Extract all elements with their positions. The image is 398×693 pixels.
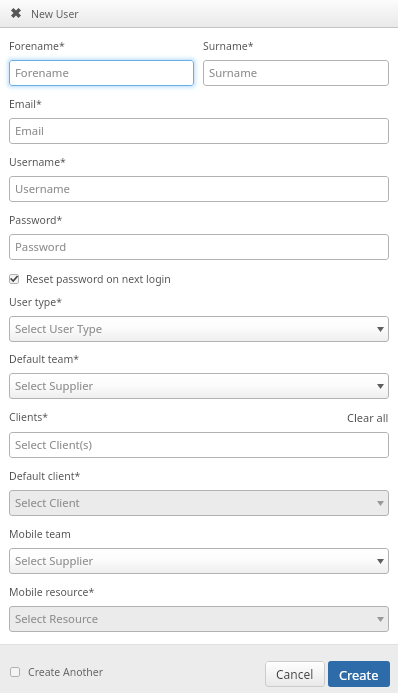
- staticText: Create Another: [28, 665, 104, 679]
- staticText: Create: [339, 666, 379, 683]
- button[interactable]: Select Client: [9, 490, 389, 516]
- button[interactable]: Username: [9, 176, 389, 202]
- staticText: Mobile resource*: [9, 585, 95, 599]
- staticText: Select Client(s): [15, 437, 92, 452]
- staticText: Surname*: [203, 39, 254, 53]
- staticText: Cancel: [276, 666, 314, 682]
- staticText: Password*: [9, 213, 63, 227]
- staticText: Email: [15, 123, 45, 138]
- staticText: Clients*: [9, 410, 49, 424]
- button[interactable]: Select Client(s): [9, 432, 389, 458]
- staticText: Mobile team: [9, 527, 71, 541]
- button[interactable]: Select Supplier: [9, 548, 389, 574]
- staticText: Select User Type: [15, 321, 103, 336]
- button[interactable]: Email: [9, 118, 389, 144]
- staticText: Surname: [209, 65, 258, 80]
- staticText: Username: [15, 181, 70, 196]
- staticText: Select Client: [15, 495, 80, 510]
- staticText: Select Supplier: [15, 378, 94, 393]
- button[interactable]: Select Supplier: [9, 373, 389, 399]
- staticText: User type*: [9, 295, 63, 309]
- button[interactable]: Close: [9, 6, 23, 20]
- staticText: Forename*: [9, 39, 65, 53]
- staticText: Email*: [9, 97, 42, 111]
- staticText: Reset password on next login: [26, 272, 171, 286]
- button[interactable]: Forename: [9, 60, 194, 86]
- staticText: Forename: [15, 65, 69, 80]
- staticText: New User: [31, 7, 79, 21]
- staticText: Username*: [9, 155, 66, 169]
- button[interactable]: Create Another: [10, 665, 104, 679]
- staticText: Select Resource: [15, 611, 99, 626]
- staticText: Password: [15, 239, 67, 254]
- button[interactable]: Create: [328, 661, 390, 687]
- staticText: Default team*: [9, 352, 80, 366]
- staticText: Default client*: [9, 469, 81, 483]
- button[interactable]: Surname: [203, 60, 389, 86]
- button[interactable]: Select User Type: [9, 316, 389, 342]
- staticText: Select Supplier: [15, 553, 94, 568]
- button[interactable]: Reset password on next login: [9, 271, 171, 287]
- button[interactable]: Password: [9, 234, 389, 260]
- button[interactable]: Select Resource: [9, 606, 389, 632]
- button[interactable]: Cancel: [265, 661, 325, 687]
- button[interactable]: Clear all: [347, 410, 389, 425]
